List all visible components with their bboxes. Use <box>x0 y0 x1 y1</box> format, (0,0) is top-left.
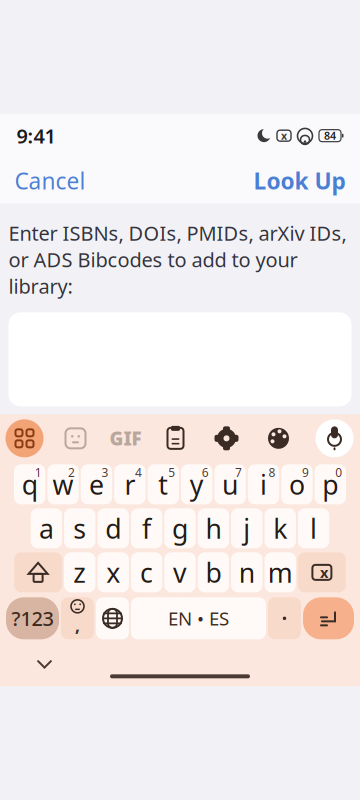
staticText: x <box>320 563 328 582</box>
button[interactable]: w <box>47 464 79 504</box>
button[interactable]: n <box>231 552 262 592</box>
staticText: Enter ISBNs, DOIs, PMIDs, arXiv IDs, or … <box>8 220 346 299</box>
staticText: 7 <box>235 464 242 480</box>
button[interactable]: r <box>114 464 146 504</box>
button[interactable]: d <box>97 508 129 548</box>
staticText: f <box>142 511 151 546</box>
button[interactable]: f <box>131 508 162 548</box>
staticText: p <box>322 467 338 502</box>
staticText: x <box>106 555 120 590</box>
staticText: 6 <box>202 464 209 480</box>
button[interactable]: x <box>97 552 129 592</box>
staticText: z <box>73 555 86 590</box>
staticText: Cancel <box>14 166 85 196</box>
staticText: i <box>260 467 267 502</box>
button[interactable]: Clipboard <box>150 416 200 460</box>
staticText: d <box>105 511 121 546</box>
staticText: 84 <box>324 129 336 143</box>
button[interactable]: z <box>64 552 95 592</box>
button[interactable]: Cancel <box>10 158 89 204</box>
button[interactable]: EN • ES <box>131 597 266 639</box>
button[interactable]: i <box>248 464 279 504</box>
button[interactable]: y <box>181 464 212 504</box>
button[interactable]: g <box>164 508 196 548</box>
staticText: 5 <box>168 464 175 480</box>
button[interactable]: Themes <box>252 416 304 460</box>
staticText: q <box>22 467 38 502</box>
staticText: 1 <box>35 464 42 480</box>
staticText: Look Up <box>253 166 345 196</box>
staticText: s <box>73 511 86 546</box>
staticText: b <box>205 555 221 590</box>
button[interactable]: p <box>315 464 346 504</box>
button[interactable]: Hide keyboard <box>22 649 66 679</box>
staticText: m <box>268 555 293 590</box>
button[interactable]: v <box>164 552 196 592</box>
staticText: o <box>289 467 305 502</box>
button[interactable]: u <box>214 464 246 504</box>
button[interactable]: l <box>298 508 329 548</box>
button[interactable]: e <box>81 464 112 504</box>
button[interactable]: Settings <box>200 416 252 460</box>
button[interactable]: Shift <box>14 552 62 592</box>
staticText: e <box>89 467 104 502</box>
staticText: y <box>190 467 204 502</box>
button[interactable]: Emoji <box>61 597 94 639</box>
button[interactable]: Stickers <box>50 416 100 460</box>
button[interactable]: Apps <box>0 416 50 460</box>
staticText: 9 <box>302 464 309 480</box>
button[interactable]: j <box>231 508 262 548</box>
button[interactable]: b <box>198 552 229 592</box>
staticText: 8 <box>268 464 275 480</box>
button[interactable]: k <box>264 508 296 548</box>
button[interactable]: Return <box>303 597 354 639</box>
staticText: h <box>205 511 221 546</box>
staticText: t <box>158 467 168 502</box>
button[interactable]: q <box>14 464 45 504</box>
staticText: v <box>173 555 187 590</box>
staticText: k <box>273 511 287 546</box>
staticText: x <box>281 129 287 143</box>
staticText: 3 <box>101 464 108 480</box>
staticText: 0 <box>335 464 342 480</box>
button[interactable]: c <box>131 552 162 592</box>
staticText: c <box>140 555 153 590</box>
staticText: ?123 <box>11 605 53 632</box>
button[interactable]: a <box>31 508 62 548</box>
button[interactable]: o <box>281 464 313 504</box>
button[interactable]: s <box>64 508 95 548</box>
button[interactable]: t <box>148 464 179 504</box>
staticText: a <box>39 511 54 546</box>
button[interactable]: Voice input <box>312 416 356 460</box>
button[interactable]: h <box>198 508 229 548</box>
button[interactable]: ?123 <box>6 597 59 639</box>
button[interactable]: Change language <box>96 597 129 639</box>
staticText: GIF <box>109 426 141 451</box>
staticText: , <box>75 614 80 637</box>
button[interactable]: Backspace <box>298 552 346 592</box>
staticText: 2 <box>68 464 75 480</box>
staticText: r <box>124 467 135 502</box>
staticText: g <box>172 511 188 546</box>
staticText: 9:41 <box>16 122 55 149</box>
button[interactable]: Period <box>268 597 301 639</box>
staticText: j <box>243 511 250 546</box>
staticText: u <box>222 467 238 502</box>
staticText: n <box>239 555 255 590</box>
button[interactable]: m <box>264 552 296 592</box>
button[interactable]: Identifier text field <box>0 312 360 406</box>
button[interactable]: GIF <box>100 416 150 460</box>
staticText: EN • ES <box>168 606 229 631</box>
button[interactable]: Look Up <box>249 158 349 204</box>
staticText: l <box>310 511 317 546</box>
staticText: 4 <box>135 464 142 480</box>
staticText: w <box>53 467 74 502</box>
